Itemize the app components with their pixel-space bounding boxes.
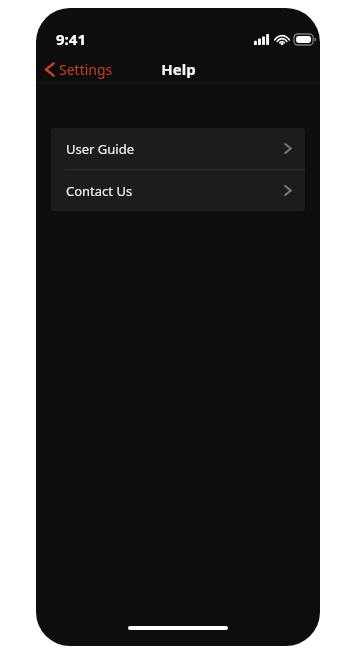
button[interactable]: Settings [40, 54, 121, 84]
other: Open Contact Us [284, 184, 292, 197]
staticText: Help [161, 59, 196, 79]
staticText: Contact Us [66, 182, 133, 200]
staticText: User Guide [66, 140, 134, 158]
button[interactable]: Contact Us [51, 170, 305, 211]
other: Open User Guide [284, 142, 292, 155]
button[interactable]: User Guide [51, 128, 305, 169]
staticText: 9:41 [56, 29, 86, 49]
staticText: Settings [59, 60, 113, 79]
